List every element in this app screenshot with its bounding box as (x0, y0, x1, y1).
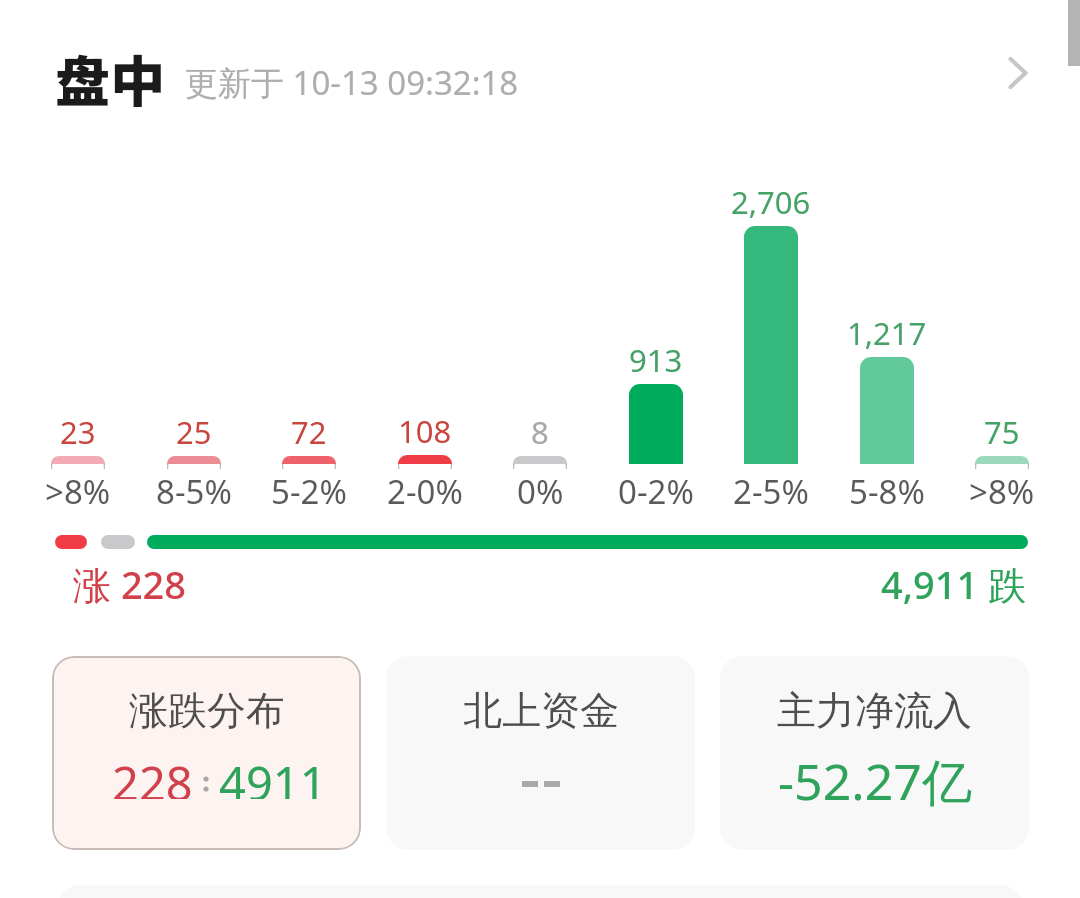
staticText: 913 (629, 339, 683, 381)
staticText: 2-5% (733, 469, 809, 514)
staticText: 75 (984, 411, 1020, 453)
staticText: 8 (531, 411, 549, 453)
staticText: >8% (969, 469, 1035, 514)
staticText: 8-5% (156, 469, 232, 514)
other: More (988, 42, 1050, 104)
staticText: 5-8% (849, 469, 925, 514)
button[interactable]: 涨跌分布 (52, 656, 361, 850)
staticText: 228 (112, 751, 193, 799)
staticText: 更新于 10-13 09:32:18 (185, 60, 519, 105)
staticText: 北上资金 (463, 686, 619, 730)
staticText: 涨 228 (73, 558, 187, 608)
staticText: 4,911 跌 (881, 558, 1027, 608)
staticText: 0% (517, 469, 564, 514)
staticText: 5-2% (271, 469, 347, 514)
staticText: 涨跌分布 (129, 686, 285, 730)
staticText: 72 (291, 411, 327, 453)
button[interactable]: 主力净流入 (720, 656, 1029, 850)
staticText: 1,217 (847, 312, 927, 354)
staticText: >8% (45, 469, 111, 514)
staticText: 0-2% (618, 469, 694, 514)
staticText: 108 (398, 410, 452, 452)
staticText: 23 (60, 411, 96, 453)
staticText: -52.27亿 (778, 747, 972, 811)
staticText: 2,706 (731, 181, 811, 223)
staticText: 25 (176, 411, 212, 453)
staticText: 主力净流入 (777, 686, 972, 730)
button[interactable]: 盘中 (0, 0, 1080, 156)
staticText: 盘中 (55, 38, 166, 118)
staticText: 2-0% (387, 469, 463, 514)
staticText: 4911 (219, 751, 327, 799)
button[interactable]: 北上资金 (386, 656, 695, 850)
